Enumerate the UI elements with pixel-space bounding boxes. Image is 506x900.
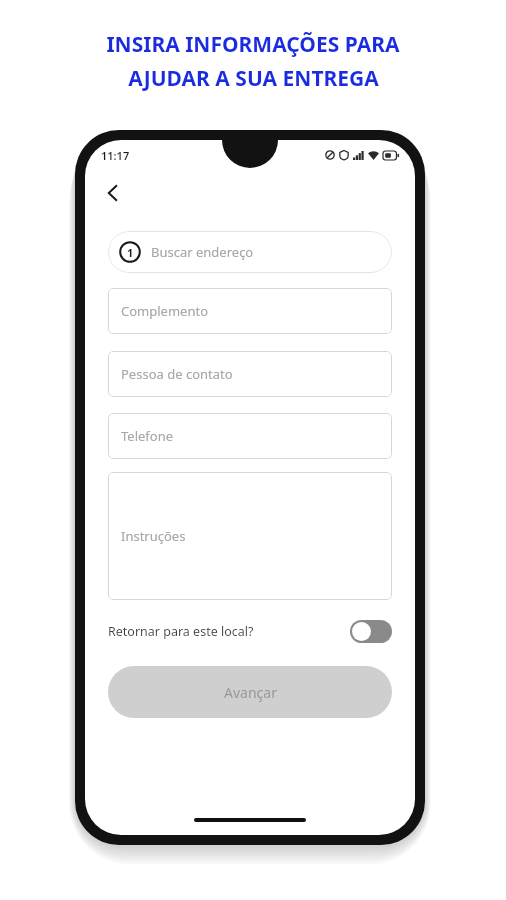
button[interactable]: Complemento [108,288,392,334]
staticText: INSIRA INFORMAÇÕES PARA [106,30,400,59]
button[interactable]: Telefone [108,413,392,459]
button[interactable]: 1 [108,231,392,273]
staticText: Complemento [121,302,208,320]
button[interactable]: Instruções [108,472,392,600]
button[interactable]: Retornar para este local? [108,616,392,646]
staticText: AJUDAR A SUA ENTREGA [128,64,379,93]
button[interactable]: Avançar [108,666,392,718]
staticText: 11:17 [101,148,130,163]
staticText: Buscar endereço [151,243,254,261]
staticText: Retornar para este local? [108,623,254,640]
staticText: Pessoa de contato [121,365,233,383]
button[interactable]: Back [93,173,133,213]
staticText: Telefone [121,427,174,445]
staticText: 1 [127,245,134,260]
staticText: Avançar [224,683,277,702]
staticText: Instruções [121,527,186,545]
button[interactable]: Return to this location toggle [350,620,392,643]
button[interactable]: Pessoa de contato [108,351,392,397]
